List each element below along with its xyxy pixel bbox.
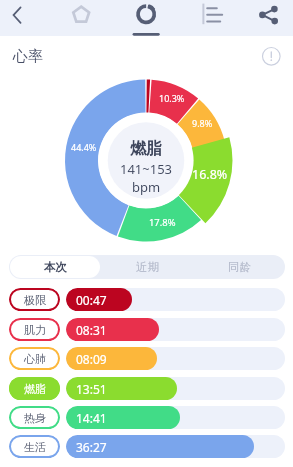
staticText: 本次 [44,260,67,274]
staticText: 08:31 [76,322,107,338]
staticText: 生活 [24,440,46,454]
staticText: bpm [132,178,161,196]
staticText: 13:51 [76,381,107,397]
button[interactable]: Info [258,43,284,69]
button[interactable]: Records [198,0,226,36]
button[interactable]: Heart rate [126,0,166,36]
button[interactable]: Back [6,3,32,29]
button[interactable]: 极限 [9,288,60,311]
button[interactable]: 08:31 [66,318,285,341]
button[interactable]: 13:51 [66,377,285,400]
button[interactable]: 心肺 [9,347,60,370]
staticText: 燃脂 [130,139,162,159]
button[interactable]: 08:09 [66,347,285,370]
staticText: 17.8% [149,216,176,229]
staticText: 16.8% [192,166,228,183]
button[interactable]: 36:27 [66,435,285,458]
button[interactable]: Activity [67,1,95,29]
button[interactable]: 本次 [10,256,100,278]
staticText: 近期 [136,260,159,274]
button[interactable]: 生活 [9,435,60,458]
staticText: 燃脂 [24,382,46,396]
staticText: 极限 [24,293,46,307]
staticText: 36:27 [76,439,107,455]
button[interactable]: 14:41 [66,406,285,429]
staticText: 心率 [13,47,43,66]
staticText: 00:47 [76,292,107,308]
staticText: 热身 [24,411,46,425]
staticText: 44.4% [71,141,97,153]
staticText: 14:41 [76,410,107,426]
staticText: 141~153 [120,160,173,178]
button[interactable]: 近期 [101,255,193,279]
button[interactable]: Share [255,0,283,36]
staticText: 08:09 [76,351,107,367]
button[interactable]: 肌力 [9,318,60,341]
button[interactable]: 燃脂 [9,377,60,400]
staticText: 9.8% [192,117,213,129]
staticText: 心肺 [24,352,46,366]
button[interactable]: 热身 [9,406,60,429]
staticText: 10.3% [159,92,185,104]
button[interactable]: 同龄 [193,255,285,279]
staticText: 肌力 [24,323,46,337]
button[interactable]: 00:47 [66,288,285,311]
staticText: 同龄 [228,260,251,274]
